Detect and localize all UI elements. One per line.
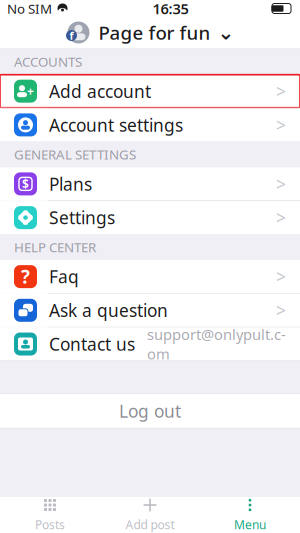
staticText: ?: [21, 264, 30, 289]
staticText: support@onlypult.com: [147, 324, 286, 363]
staticText: Plans: [49, 172, 92, 195]
staticText: Log out: [119, 399, 181, 422]
button[interactable]: Settings: [0, 201, 300, 234]
staticText: Faq: [49, 265, 79, 288]
staticText: >: [276, 172, 286, 195]
button[interactable]: +: [0, 75, 300, 108]
staticText: >: [276, 113, 286, 136]
button[interactable]: f: [65, 20, 234, 45]
staticText: >: [276, 299, 286, 322]
staticText: Add account: [49, 80, 151, 103]
staticText: 16:35: [152, 0, 188, 18]
button[interactable]: $: [0, 167, 300, 200]
staticText: Settings: [49, 206, 115, 229]
button[interactable]: Menu: [200, 498, 300, 532]
staticText: GENERAL SETTINGS: [14, 145, 136, 163]
staticText: +: [27, 83, 34, 99]
staticText: >: [276, 206, 286, 229]
button[interactable]: ?: [0, 260, 300, 293]
staticText: Ask a question: [49, 299, 168, 322]
button[interactable]: Account settings: [0, 108, 300, 141]
staticText: Menu: [234, 516, 266, 532]
staticText: >: [276, 265, 286, 288]
staticText: Contact us: [49, 332, 135, 355]
button[interactable]: Contact us: [0, 327, 300, 360]
staticText: f: [69, 28, 73, 43]
button[interactable]: Add post: [100, 498, 200, 532]
staticText: HELP CENTER: [14, 238, 96, 256]
staticText: Posts: [35, 516, 65, 532]
button[interactable]: Posts: [0, 498, 100, 532]
staticText: >: [276, 80, 286, 103]
button[interactable]: Ask a question: [0, 294, 300, 327]
staticText: $: [22, 176, 29, 192]
staticText: Account settings: [49, 113, 183, 136]
staticText: Page for fun: [98, 20, 210, 45]
staticText: No SIM: [7, 0, 52, 17]
button[interactable]: Log out: [0, 394, 300, 428]
staticText: ACCOUNTS: [14, 53, 82, 70]
staticText: ⌄: [217, 21, 234, 44]
staticText: Add post: [125, 516, 174, 532]
